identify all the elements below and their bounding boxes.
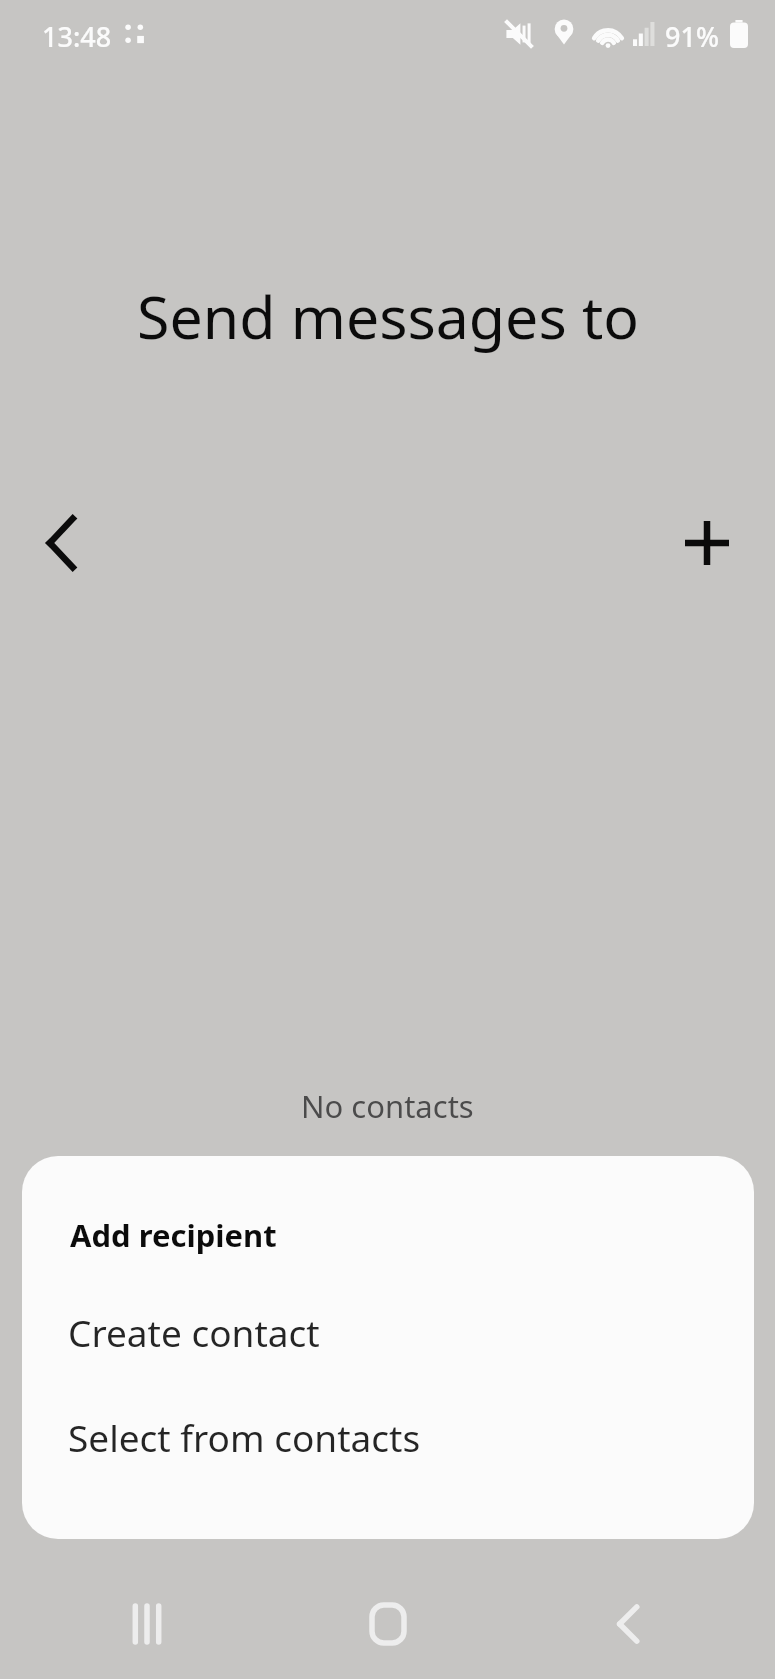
button[interactable]: Create contact — [22, 1282, 754, 1382]
button[interactable]: Back — [22, 504, 100, 582]
staticText: Add recipient — [70, 1214, 277, 1256]
button[interactable]: Recents — [116, 1593, 178, 1655]
staticText: Send messages to — [137, 276, 639, 356]
button[interactable]: Select from contacts — [22, 1387, 754, 1487]
staticText: 13:48 — [42, 18, 112, 55]
staticText: Create contact — [68, 1307, 320, 1357]
staticText: Select from contacts — [68, 1412, 421, 1462]
staticText: No contacts — [301, 1085, 474, 1127]
button[interactable]: Back — [597, 1593, 659, 1655]
button[interactable]: Home — [357, 1593, 419, 1655]
button[interactable]: Add recipient — [668, 504, 746, 582]
staticText: 91% — [665, 18, 719, 55]
